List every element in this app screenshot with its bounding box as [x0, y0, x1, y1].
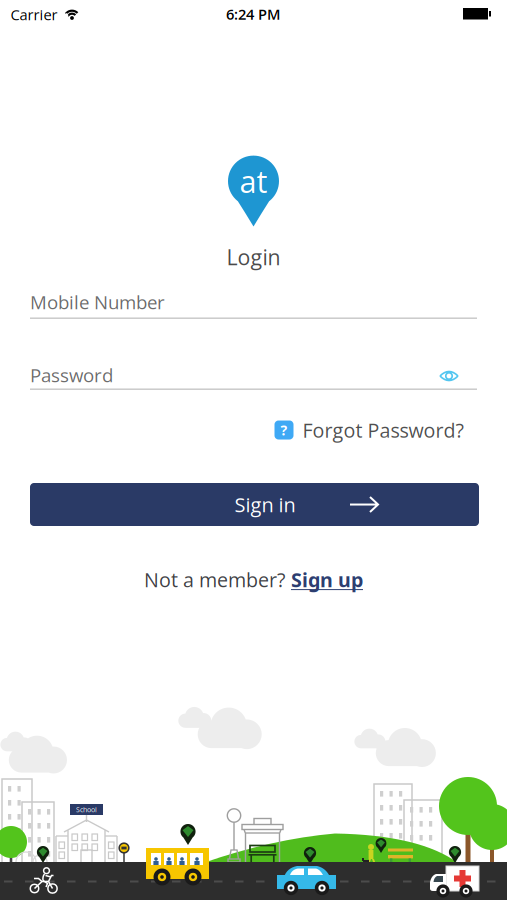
button[interactable]: Password — [30, 359, 440, 391]
staticText: at — [239, 160, 267, 202]
staticText: Password — [30, 362, 113, 388]
staticText: School — [76, 805, 97, 814]
staticText: ? — [280, 420, 287, 440]
staticText: Carrier — [10, 4, 57, 24]
staticText: Sign up — [291, 566, 363, 593]
staticText: Forgot Password? — [302, 417, 463, 443]
button[interactable]: Sign in — [30, 483, 479, 526]
staticText: Not a member? — [144, 566, 285, 593]
staticText: 6:24 PM — [226, 4, 281, 24]
button[interactable]: Mobile Number — [30, 287, 477, 319]
staticText: Sign in — [234, 491, 295, 518]
staticText: Login — [226, 242, 280, 272]
staticText: Mobile Number — [30, 289, 165, 315]
button[interactable]: Sign up — [291, 566, 363, 593]
button[interactable]: ? — [0, 0, 507, 900]
button[interactable]: Show password — [435, 362, 465, 388]
